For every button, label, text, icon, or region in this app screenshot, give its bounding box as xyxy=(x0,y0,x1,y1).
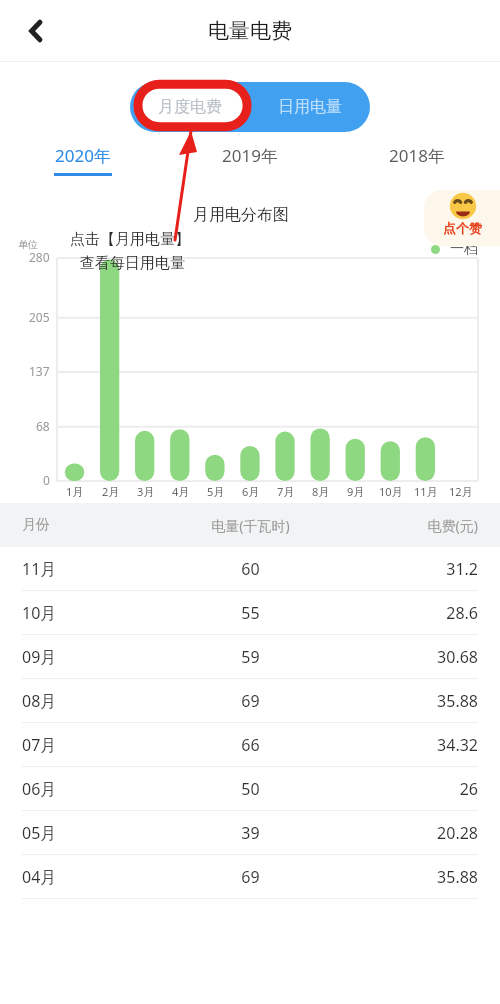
button[interactable]: 07月 xyxy=(0,723,500,767)
button[interactable]: 09月 xyxy=(0,635,500,679)
staticText: 2月 xyxy=(102,484,120,499)
staticText: 6月 xyxy=(242,484,260,499)
staticText: 04月 xyxy=(22,866,163,888)
staticText: 点击【月用电量】 xyxy=(70,230,190,249)
staticText: 电量电费 xyxy=(208,18,292,44)
button[interactable]: 10月 xyxy=(0,591,500,635)
staticText: 8月 xyxy=(312,484,330,499)
staticText: 点个赞 xyxy=(443,220,482,236)
staticText: 35.88 xyxy=(338,690,478,712)
staticText: 10月 xyxy=(379,484,403,499)
staticText: 08月 xyxy=(22,690,163,712)
staticText: 11月 xyxy=(22,558,163,580)
button[interactable]: 04月 xyxy=(0,855,500,899)
button[interactable]: 2018年 xyxy=(333,144,500,176)
staticText: 7月 xyxy=(277,484,295,499)
staticText: 280 xyxy=(29,249,50,265)
button[interactable]: 05月 xyxy=(0,811,500,855)
staticText: 电量(千瓦时) xyxy=(163,516,338,535)
staticText: 66 xyxy=(163,734,338,756)
button[interactable]: 月度电费 xyxy=(134,86,246,128)
staticText: 205 xyxy=(29,309,50,325)
staticText: 月用电分布图 xyxy=(193,205,289,225)
staticText: 50 xyxy=(163,778,338,800)
staticText: 日用电量 xyxy=(278,97,342,117)
staticText: 68 xyxy=(36,418,50,434)
staticText: 单位 xyxy=(18,238,38,251)
staticText: 31.2 xyxy=(338,558,478,580)
staticText: 34.32 xyxy=(338,734,478,756)
staticText: 10月 xyxy=(22,602,163,624)
staticText: 35.88 xyxy=(338,866,478,888)
staticText: 查看每日用电量 xyxy=(80,254,185,273)
button[interactable]: 日用电量 xyxy=(250,82,370,132)
staticText: 0 xyxy=(43,472,50,488)
staticText: 28.6 xyxy=(338,602,478,624)
staticText: 07月 xyxy=(22,734,163,756)
staticText: 2019年 xyxy=(222,144,278,167)
staticText: 5月 xyxy=(207,484,225,499)
staticText: 月度电费 xyxy=(158,97,222,117)
staticText: 2020年 xyxy=(55,144,111,167)
staticText: 69 xyxy=(163,866,338,888)
button[interactable]: Like xyxy=(424,190,500,246)
staticText: 09月 xyxy=(22,646,163,668)
staticText: 20.28 xyxy=(338,822,478,844)
staticText: 06月 xyxy=(22,778,163,800)
button[interactable]: 2019年 xyxy=(166,144,333,176)
staticText: 一档 xyxy=(450,240,478,258)
staticText: 9月 xyxy=(347,484,365,499)
staticText: 39 xyxy=(163,822,338,844)
staticText: 05月 xyxy=(22,822,163,844)
staticText: 55 xyxy=(163,602,338,624)
staticText: 12月 xyxy=(449,484,473,499)
staticText: 月份 xyxy=(22,516,163,534)
staticText: 11月 xyxy=(414,484,438,499)
staticText: 2018年 xyxy=(389,144,445,167)
staticText: 26 xyxy=(338,778,478,800)
staticText: 1月 xyxy=(66,484,84,499)
button[interactable]: 08月 xyxy=(0,679,500,723)
staticText: 电费(元) xyxy=(338,516,478,535)
staticText: 60 xyxy=(163,558,338,580)
staticText: 4月 xyxy=(172,484,190,499)
staticText: 137 xyxy=(29,363,50,379)
button[interactable]: 06月 xyxy=(0,767,500,811)
button[interactable]: Back xyxy=(14,9,58,53)
staticText: 69 xyxy=(163,690,338,712)
staticText: 59 xyxy=(163,646,338,668)
staticText: 3月 xyxy=(137,484,155,499)
staticText: 30.68 xyxy=(338,646,478,668)
button[interactable]: 2020年 xyxy=(0,144,166,176)
button[interactable]: 11月 xyxy=(0,547,500,591)
